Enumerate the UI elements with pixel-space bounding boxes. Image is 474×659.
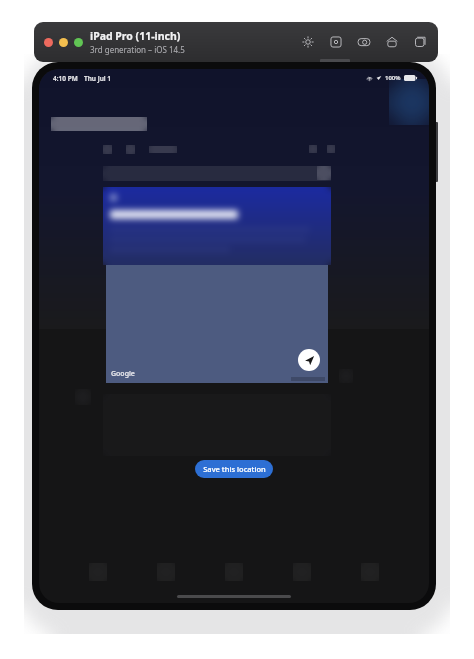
staticText: iPad Pro (11-inch)	[90, 29, 181, 43]
button[interactable]: Rotate	[326, 32, 346, 52]
staticText: 100%	[385, 74, 401, 82]
staticText: Save this location	[203, 464, 266, 474]
button[interactable]: Home	[382, 32, 402, 52]
button[interactable]: More	[410, 32, 430, 52]
button[interactable]: My location	[298, 349, 320, 371]
button[interactable]: Screenshot	[354, 32, 374, 52]
button[interactable]: Close	[44, 38, 53, 47]
staticText: 4:10 PM	[53, 74, 78, 83]
staticText: 3rd generation – iOS 14.5	[90, 44, 185, 55]
button[interactable]: Appearance	[298, 32, 318, 52]
button[interactable]: Save this location	[195, 460, 273, 478]
button[interactable]: Zoom	[74, 38, 83, 47]
staticText: Google	[111, 369, 135, 379]
button[interactable]: Google	[106, 265, 328, 383]
staticText: Thu Jul 1	[84, 74, 112, 83]
button[interactable]: Minimize	[59, 38, 68, 47]
